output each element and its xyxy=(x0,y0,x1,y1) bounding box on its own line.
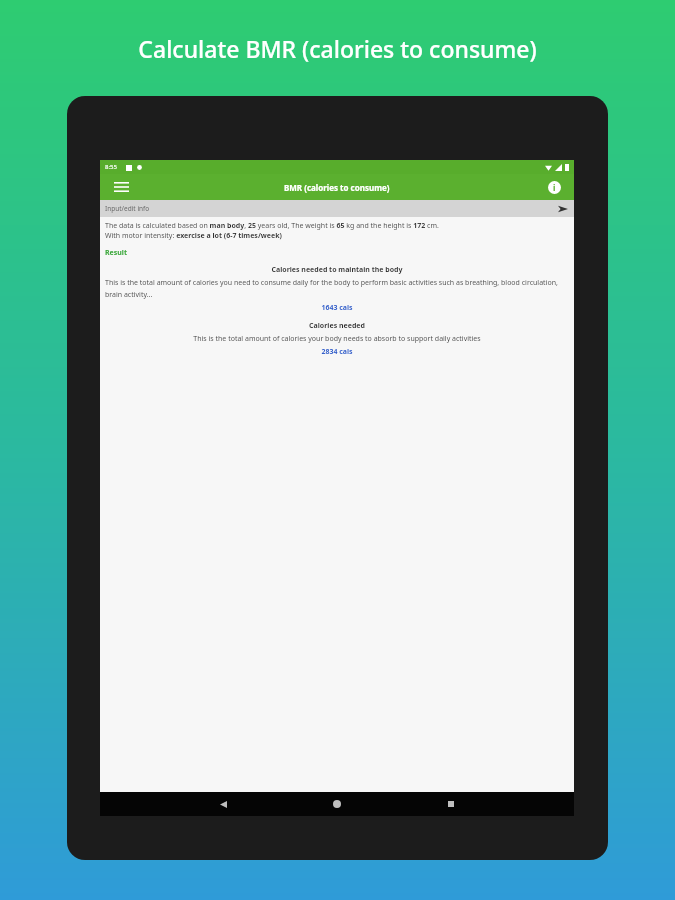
staticText: i xyxy=(553,182,556,193)
button[interactable]: Home xyxy=(327,794,347,814)
staticText: 8:55 xyxy=(105,163,117,171)
staticText: With motor intensity: exercise a lot (6-… xyxy=(105,231,282,241)
button[interactable]: Back xyxy=(213,794,233,814)
staticText: Calculate BMR (calories to consume) xyxy=(138,33,537,64)
button[interactable]: Send xyxy=(557,203,569,215)
staticText: This is the total amount of calories you… xyxy=(105,278,569,299)
staticText: Calories needed to maintain the body xyxy=(105,265,569,275)
staticText: 1643 cals xyxy=(105,303,569,313)
button[interactable]: Info xyxy=(544,177,564,197)
staticText: Calories needed xyxy=(105,321,569,331)
staticText: This is the total amount of calories you… xyxy=(105,334,569,344)
button[interactable]: Menu xyxy=(110,176,132,198)
staticText: Input/edit info xyxy=(105,204,150,213)
button[interactable]: Input/edit info xyxy=(100,200,574,217)
staticText: BMR (calories to consume) xyxy=(284,182,390,193)
staticText: Result xyxy=(105,248,127,258)
staticText: The data is calculated based on man body… xyxy=(105,221,439,231)
button[interactable]: Recent apps xyxy=(441,794,461,814)
staticText: 2834 cals xyxy=(105,347,569,357)
